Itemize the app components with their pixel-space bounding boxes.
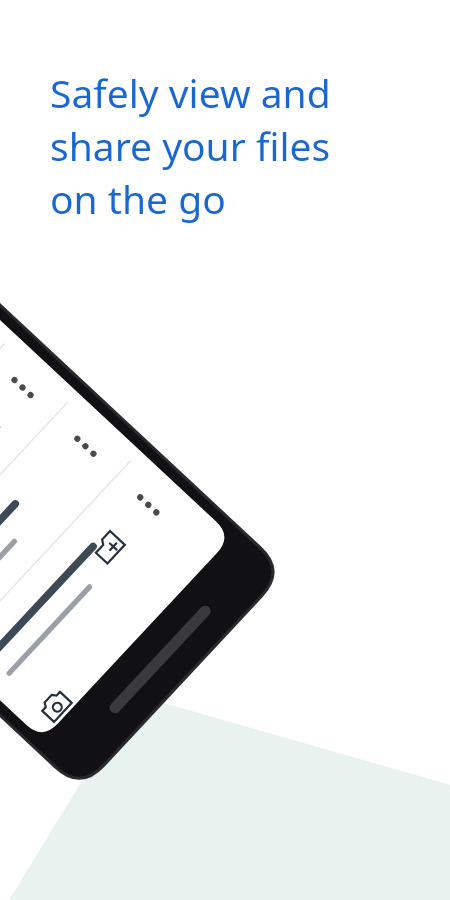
button[interactable]: Safely view and (50, 66, 339, 225)
staticText: share your files (50, 119, 331, 172)
staticText: on the go (50, 172, 226, 225)
staticText: Safely view and (50, 66, 331, 119)
